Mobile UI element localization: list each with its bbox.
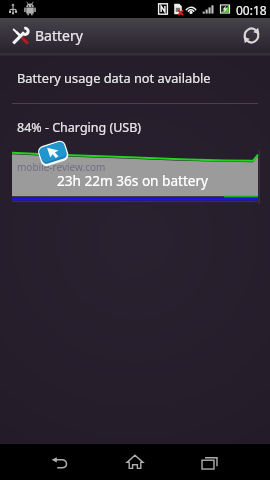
- button[interactable]: Home: [111, 444, 159, 480]
- staticText: Battery: [35, 26, 83, 45]
- staticText: 84% - Charging (USB): [17, 119, 142, 136]
- staticText: 23h 22m 36s on battery: [57, 171, 209, 190]
- button[interactable]: Back: [36, 444, 84, 480]
- button[interactable]: Refresh: [232, 18, 270, 53]
- button[interactable]: Recent apps: [186, 444, 234, 480]
- staticText: 00:18: [236, 2, 267, 18]
- staticText: mobile-review.com: [17, 160, 106, 174]
- button[interactable]: Battery: [0, 18, 167, 53]
- staticText: Battery usage data not available: [17, 69, 211, 86]
